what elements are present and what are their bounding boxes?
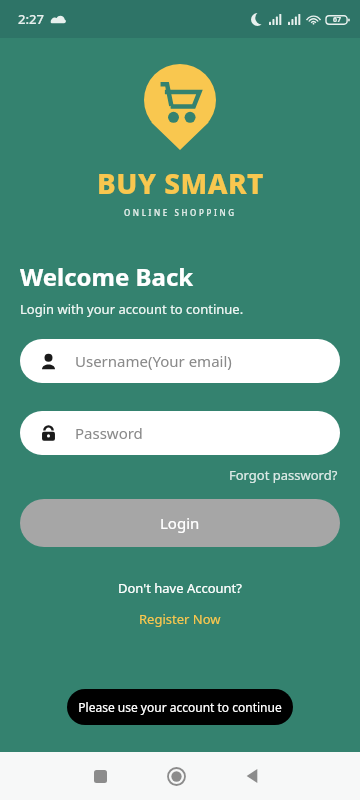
button[interactable]: Home bbox=[154, 754, 198, 798]
button[interactable]: Recent apps bbox=[78, 754, 122, 798]
button[interactable]: Login bbox=[20, 499, 340, 547]
staticText: 2:27 bbox=[18, 10, 44, 28]
staticText: Please use your account to continue bbox=[78, 699, 282, 715]
staticText: Login with your account to continue. bbox=[20, 300, 244, 318]
staticText: Forgot password? bbox=[229, 466, 338, 484]
staticText: Don't have Account? bbox=[118, 579, 242, 597]
staticText: Password bbox=[75, 423, 143, 443]
staticText: Login bbox=[160, 513, 200, 533]
staticText: 67 bbox=[333, 15, 342, 25]
staticText: BUY SMART bbox=[97, 164, 264, 202]
staticText: Username(Your email) bbox=[75, 351, 232, 371]
staticText: Welcome Back bbox=[20, 260, 194, 293]
button[interactable]: Register Now bbox=[135, 608, 225, 630]
button[interactable]: Password bbox=[20, 411, 340, 455]
button[interactable]: Back bbox=[230, 754, 274, 798]
staticText: ONLINE SHOPPING bbox=[124, 207, 237, 218]
button[interactable]: Forgot password? bbox=[227, 464, 340, 486]
staticText: Register Now bbox=[139, 610, 221, 628]
button[interactable]: Username(Your email) bbox=[20, 339, 340, 383]
